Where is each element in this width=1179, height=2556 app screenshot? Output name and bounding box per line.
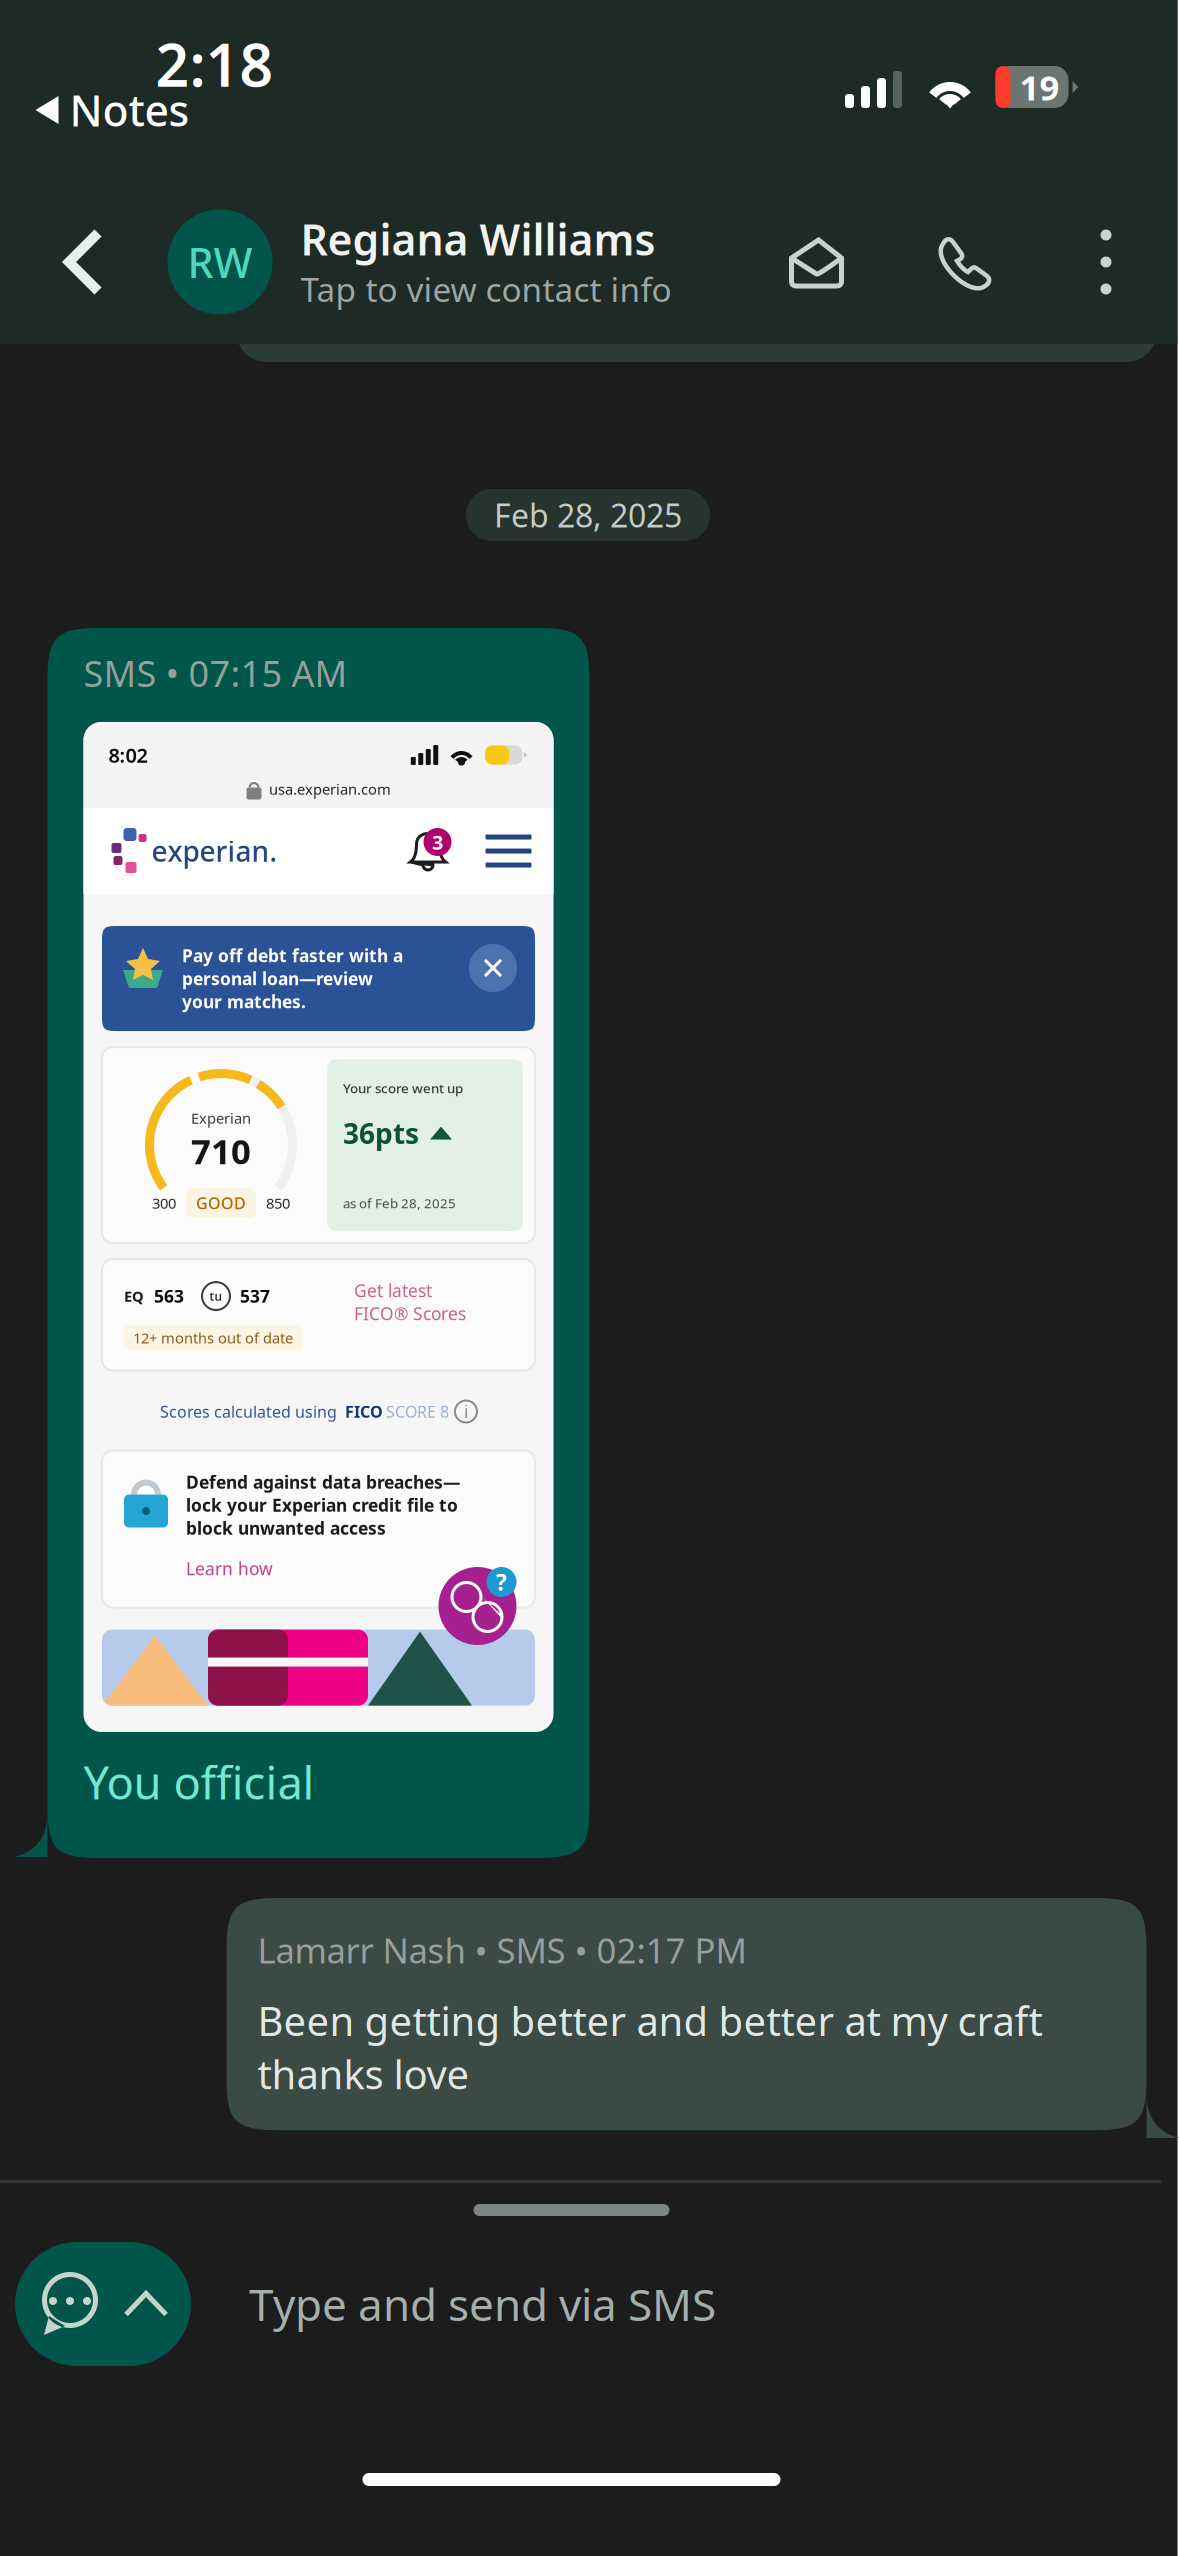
staticText: Experian <box>191 1108 251 1128</box>
staticText: 36pts <box>343 1114 419 1152</box>
staticText: Type and send via SMS <box>249 2275 716 2333</box>
staticText: tu <box>209 1288 222 1304</box>
staticText: Been getting better and better at my cra… <box>257 1994 1042 2100</box>
staticText: FICO <box>345 1401 383 1422</box>
button[interactable]: Choose SMS <box>15 2242 191 2366</box>
staticText: Your score went up <box>343 1079 463 1097</box>
staticText: GOOD <box>196 1192 246 1214</box>
button[interactable]: RW <box>167 180 720 344</box>
staticText: 300 <box>152 1193 176 1213</box>
staticText: 3 <box>432 829 443 855</box>
staticText: Regiana Williams <box>300 211 655 267</box>
staticText: 19 <box>1019 64 1059 110</box>
staticText: 850 <box>266 1193 290 1213</box>
button[interactable]: Type and send via SMS <box>191 2242 1109 2366</box>
staticText: 8:02 <box>108 742 147 768</box>
staticText: 2:18 <box>155 25 273 103</box>
button[interactable]: More options <box>1034 180 1177 344</box>
staticText: You official <box>83 1752 314 1812</box>
staticText: 563 <box>154 1284 184 1307</box>
staticText: 710 <box>191 1128 251 1174</box>
button[interactable]: Back <box>0 180 167 344</box>
staticText: 537 <box>240 1284 270 1307</box>
staticText: RW <box>187 235 252 289</box>
button[interactable]: Email <box>743 180 889 344</box>
staticText: Lamarr Nash • SMS • 02:17 PM <box>257 1927 746 1973</box>
staticText: usa.experian.com <box>269 779 391 799</box>
staticText: Learn how <box>186 1557 273 1580</box>
staticText: Defend against data breaches—lock your E… <box>186 1470 460 1540</box>
staticText: i <box>464 1400 468 1423</box>
staticText: ? <box>496 1567 507 1597</box>
staticText: Scores calculated using <box>160 1401 337 1422</box>
staticText: Tap to view contact info <box>300 267 671 311</box>
staticText: Pay off debt faster with a personal loan… <box>182 944 403 1013</box>
staticText: experian. <box>151 832 277 870</box>
staticText: as of Feb 28, 2025 <box>343 1194 456 1212</box>
staticText: SCORE 8 <box>386 1401 449 1422</box>
button[interactable]: Call <box>889 180 1034 344</box>
staticText: SMS • 07:15 AM <box>83 649 347 697</box>
staticText: 12+ months out of date <box>133 1328 293 1348</box>
staticText: EQ <box>124 1286 144 1306</box>
staticText: Feb 28, 2025 <box>494 494 682 536</box>
staticText: Get latest FICO® Scores <box>354 1279 466 1325</box>
staticText: Notes <box>69 82 189 138</box>
